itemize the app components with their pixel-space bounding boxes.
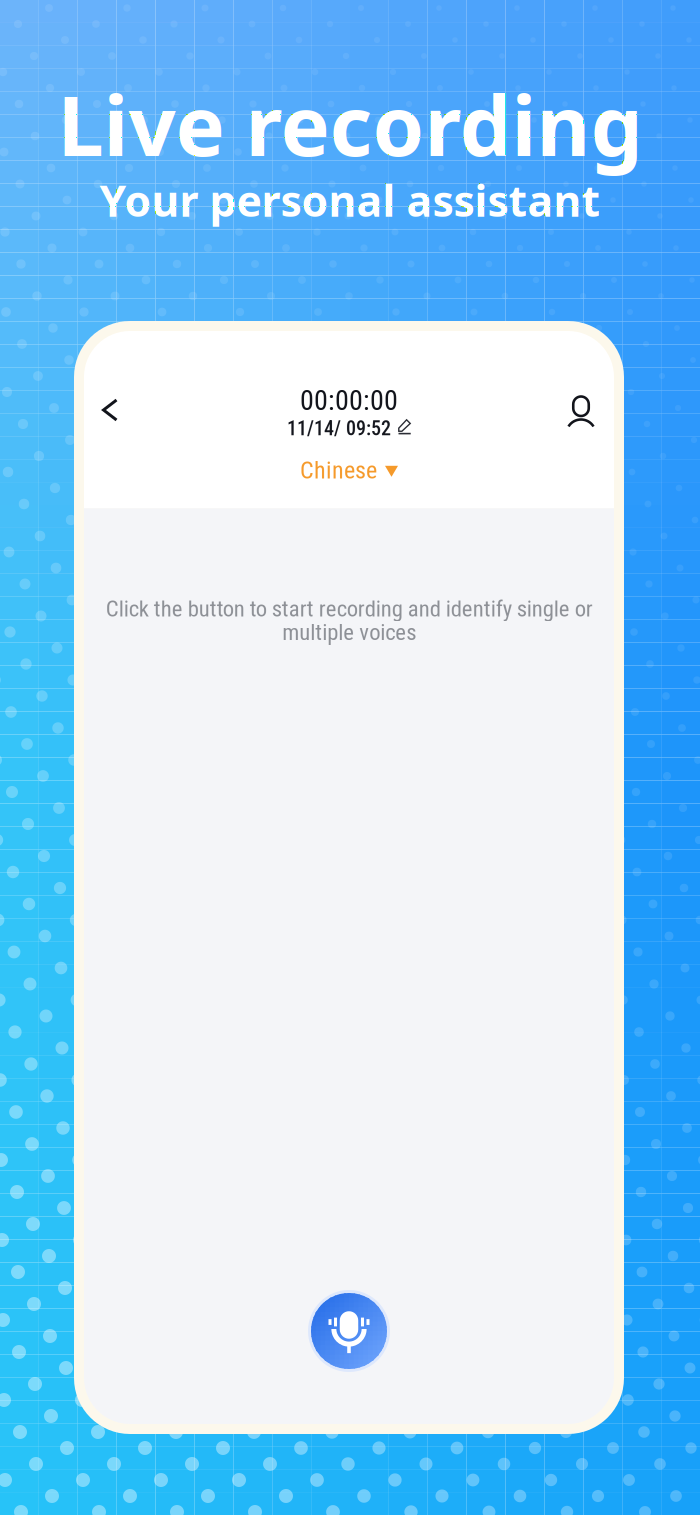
staticText: Chinese: [300, 456, 377, 484]
staticText: Click the button to start recording and …: [105, 595, 592, 645]
staticText: Your personal assistant: [99, 172, 600, 228]
button[interactable]: Start recording: [304, 1286, 394, 1376]
staticText: 11/14/ 09:52: [287, 417, 391, 440]
button[interactable]: Back: [84, 384, 136, 436]
staticText: Live recording: [57, 69, 642, 179]
button[interactable]: Account: [555, 386, 607, 438]
staticText: 00:00:00: [300, 384, 398, 417]
button[interactable]: Chinese: [290, 451, 408, 489]
